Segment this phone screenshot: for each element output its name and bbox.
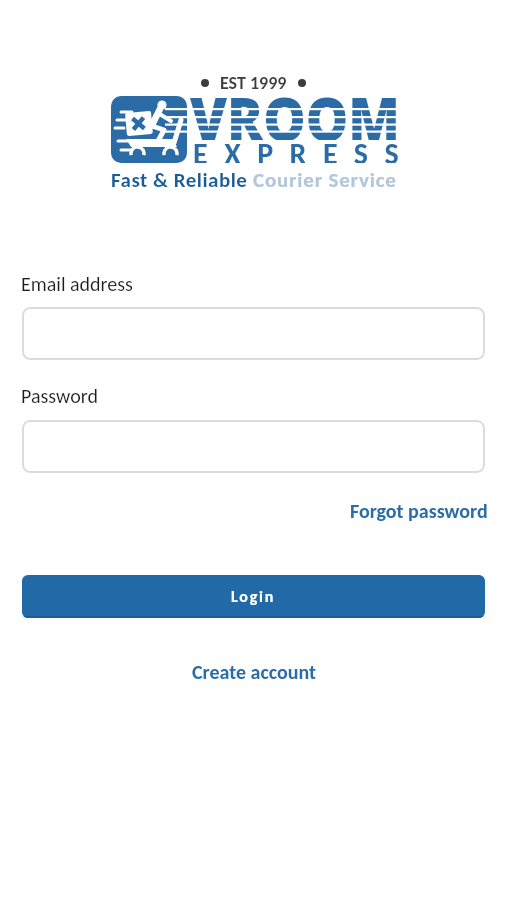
staticText: VROOM [190, 76, 400, 140]
staticText: Email address [21, 272, 133, 296]
button[interactable]: Create account [192, 660, 316, 684]
button[interactable] [22, 420, 485, 473]
button[interactable]: Forgot password [350, 499, 488, 523]
staticText: Password [21, 384, 98, 408]
staticText: EST 1999 [220, 72, 287, 94]
button[interactable]: Login [22, 575, 485, 618]
staticText: Create account [192, 660, 316, 684]
staticText: Login [231, 587, 276, 607]
button[interactable] [22, 307, 485, 360]
staticText: Fast & Reliable [111, 167, 253, 191]
staticText: EXPRESS [193, 135, 416, 163]
staticText: Forgot password [350, 499, 488, 523]
staticText: Courier Service [253, 167, 397, 191]
